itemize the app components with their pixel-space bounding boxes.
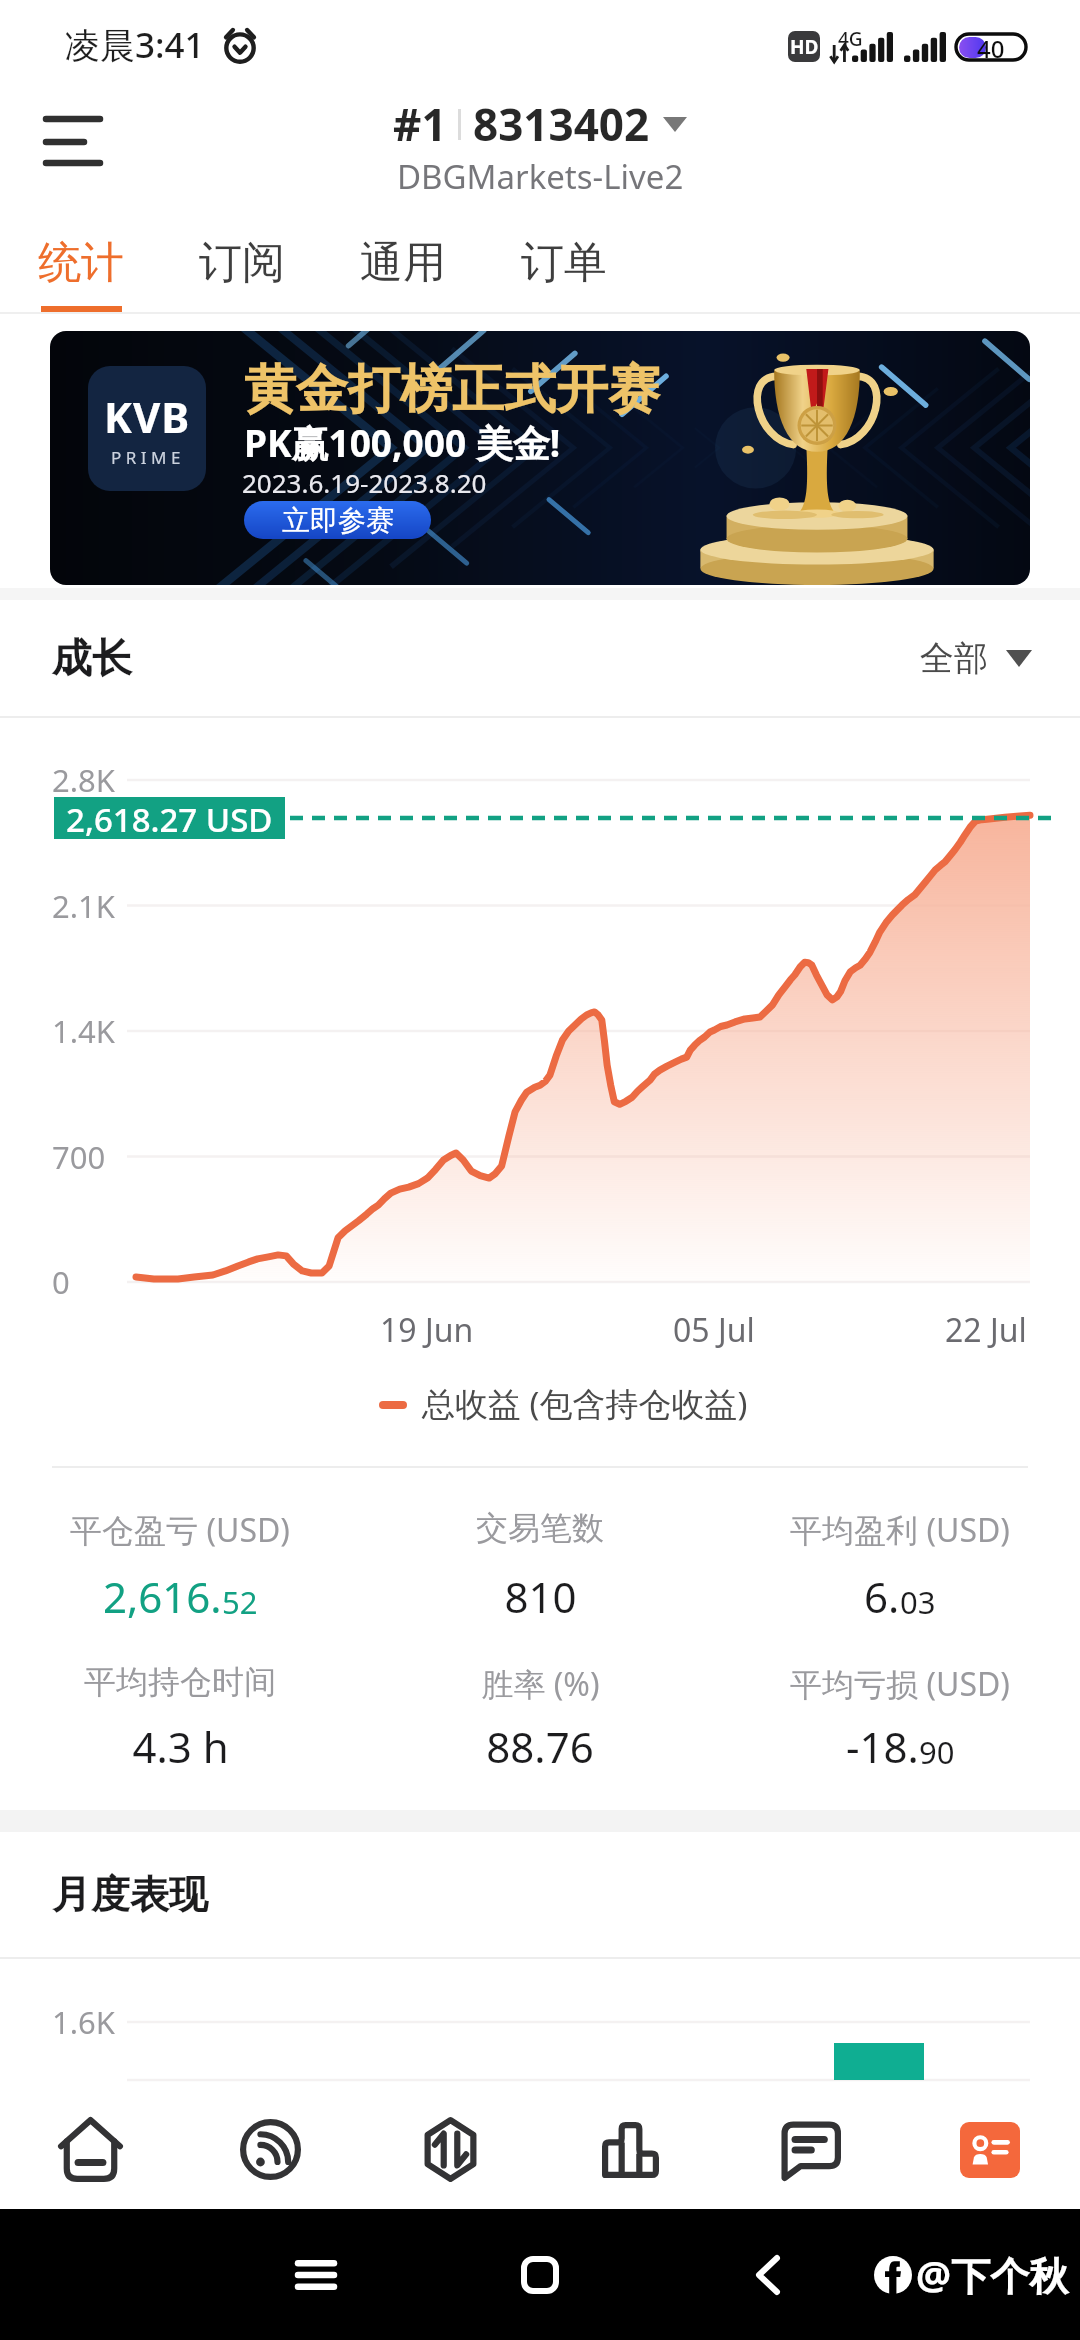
button[interactable]: Messages xyxy=(720,2090,900,2209)
staticText: 成长 xyxy=(52,633,132,683)
button[interactable]: Menu xyxy=(16,100,106,190)
staticText: @下个秋 xyxy=(916,2248,1069,2301)
staticText: 0 xyxy=(52,1261,70,1303)
button[interactable]: 通用 xyxy=(322,228,483,314)
staticText: 19 Jun xyxy=(380,1308,474,1352)
staticText: 22 Jul xyxy=(945,1308,1027,1352)
button[interactable]: Signals xyxy=(180,2090,360,2209)
staticText: 黄金打榜正式开赛 xyxy=(244,357,660,423)
staticText: 05 Jul xyxy=(673,1308,755,1352)
staticText: 平均持仓时间 xyxy=(84,1662,276,1702)
staticText: #1 xyxy=(393,94,447,154)
staticText: 平仓盈亏 (USD) xyxy=(70,1508,290,1552)
staticText: 6. xyxy=(864,1568,900,1625)
staticText: 订阅 xyxy=(199,236,285,290)
staticText: KVB xyxy=(104,388,191,445)
button[interactable]: #1 xyxy=(393,94,687,199)
button[interactable]: Home xyxy=(490,2225,590,2325)
staticText: 1.4K xyxy=(52,1010,115,1052)
staticText: 统计 xyxy=(38,236,124,290)
staticText: 全部 xyxy=(920,637,988,680)
button[interactable]: Trade xyxy=(360,2090,540,2209)
button[interactable]: 订阅 xyxy=(161,228,322,314)
staticText: 2,618.27 USD xyxy=(66,797,273,839)
button[interactable]: Statistics xyxy=(540,2090,720,2209)
staticText: PK赢100,000 美金! xyxy=(244,417,561,468)
staticText: PRIME xyxy=(111,446,185,469)
button[interactable]: 全部 xyxy=(920,637,1032,680)
staticText: 凌晨3:41 xyxy=(65,21,205,69)
button[interactable]: KVB xyxy=(50,331,1030,585)
staticText: 胜率 (%) xyxy=(481,1662,600,1706)
staticText: -18. xyxy=(846,1718,919,1775)
staticText: 88.76 xyxy=(486,1718,594,1775)
staticText: 1.6K xyxy=(52,2001,115,2043)
staticText: 4.3 h xyxy=(132,1718,229,1775)
staticText: 平均亏损 (USD) xyxy=(790,1662,1010,1706)
staticText: 810 xyxy=(504,1568,577,1625)
button[interactable]: 立即参赛 xyxy=(244,501,431,539)
staticText: 立即参赛 xyxy=(282,503,394,538)
staticText: 90 xyxy=(919,1731,955,1773)
staticText: 2.8K xyxy=(52,759,115,801)
button[interactable]: Home xyxy=(0,2090,180,2209)
button[interactable]: Back xyxy=(718,2225,818,2325)
staticText: 总收益 (包含持仓收益) xyxy=(422,1381,748,1426)
button[interactable]: Recents xyxy=(266,2225,366,2325)
staticText: 通用 xyxy=(360,236,446,290)
staticText: 8313402 xyxy=(473,94,650,154)
staticText: 2.1K xyxy=(52,885,115,927)
staticText: 2023.6.19-2023.8.20 xyxy=(242,465,487,500)
button[interactable]: Profile xyxy=(900,2090,1080,2209)
staticText: 03 xyxy=(900,1581,936,1623)
button[interactable]: 订单 xyxy=(483,228,644,314)
staticText: 月度表现 xyxy=(52,1870,208,1919)
staticText: DBGMarkets-Live2 xyxy=(397,154,684,199)
staticText: 52 xyxy=(222,1581,258,1623)
staticText: 700 xyxy=(52,1136,106,1178)
staticText: 平均盈利 (USD) xyxy=(790,1508,1010,1552)
staticText: 订单 xyxy=(521,236,607,290)
staticText: HD xyxy=(790,34,819,60)
staticText: 交易笔数 xyxy=(476,1508,604,1548)
staticText: 2,616. xyxy=(103,1568,222,1625)
button[interactable]: 统计 xyxy=(0,228,161,314)
staticText: 4G xyxy=(838,26,863,50)
staticText: 40 xyxy=(977,32,1005,58)
